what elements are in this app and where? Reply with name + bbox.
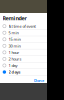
staticText: Reminder <box>3 15 27 22</box>
button[interactable]: 5 min <box>0 30 47 36</box>
button[interactable]: Done <box>34 78 47 83</box>
button[interactable]: 2 days <box>0 69 47 75</box>
button[interactable]: 30 min <box>0 43 47 49</box>
button[interactable]: 15 min <box>0 36 47 43</box>
staticText: 15 min <box>9 37 21 42</box>
staticText: 2 days <box>9 69 21 75</box>
button[interactable]: 1 hour <box>0 49 47 56</box>
staticText: At time of event <box>9 23 36 29</box>
staticText: 1 day <box>9 63 18 68</box>
staticText: 30 min <box>9 43 21 48</box>
button[interactable]: 1 day <box>0 62 47 69</box>
staticText: 5 min <box>9 30 19 35</box>
staticText: 1 hour <box>9 50 20 55</box>
staticText: 2 hours <box>9 56 22 62</box>
button[interactable]: 2 hours <box>0 56 47 62</box>
staticText: Done <box>34 78 44 83</box>
button[interactable]: At time of event <box>0 23 47 30</box>
